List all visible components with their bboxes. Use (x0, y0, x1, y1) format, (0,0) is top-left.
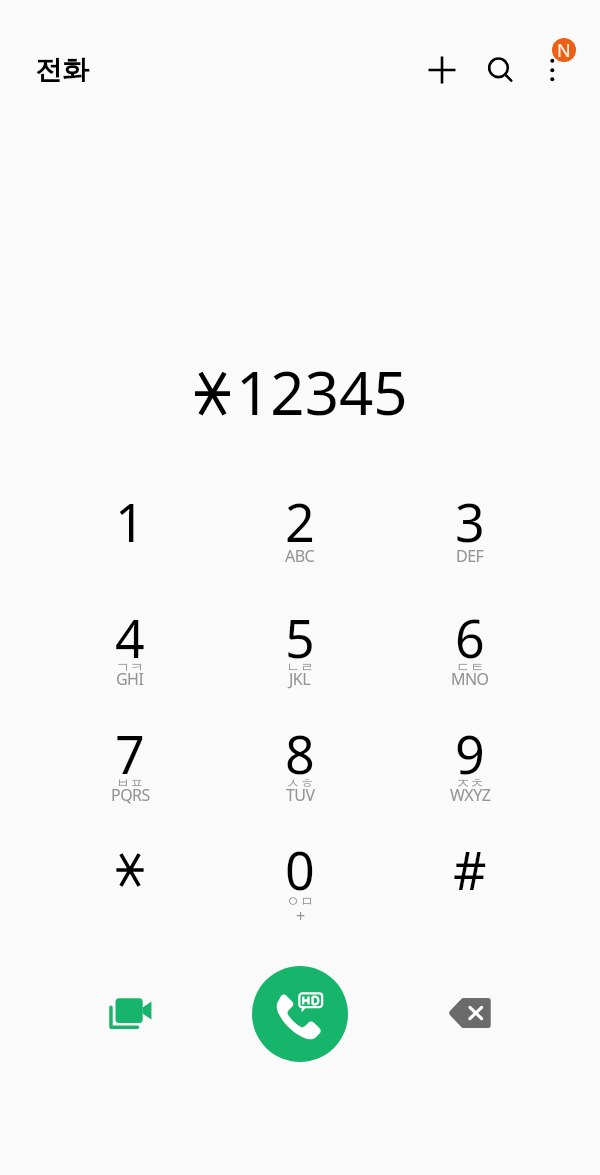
staticText: ㅇㅁ (286, 893, 314, 911)
staticText: TUV (286, 784, 315, 806)
staticText: 12345 (236, 351, 408, 433)
staticText: 4 (115, 602, 145, 673)
button[interactable]: 6 (385, 587, 555, 703)
staticText: DEF (456, 545, 484, 567)
staticText: JKL (289, 668, 311, 690)
staticText: + (296, 905, 305, 927)
button[interactable]: Backspace (438, 979, 506, 1047)
button[interactable]: 7 (45, 703, 215, 819)
button[interactable]: 1 (45, 471, 215, 587)
staticText: 3 (455, 486, 485, 557)
button[interactable]: Call (252, 966, 348, 1062)
staticText: 0 (285, 834, 315, 905)
staticText: 2 (285, 486, 315, 557)
button[interactable]: 9 (385, 703, 555, 819)
staticText: ㅅㅎ (286, 775, 314, 793)
staticText: 6 (455, 602, 485, 673)
button[interactable]: # (385, 819, 555, 935)
staticText: # (453, 834, 487, 905)
staticText: MNO (451, 668, 489, 690)
staticText: ㅂㅍ (116, 775, 144, 793)
staticText: N (557, 38, 571, 62)
button[interactable]: Search (476, 45, 524, 93)
staticText: ㅈㅊ (456, 775, 484, 793)
button[interactable]: Video call (96, 979, 164, 1047)
staticText: ABC (285, 545, 315, 567)
staticText: ㄱㅋ (116, 659, 144, 677)
staticText: 9 (455, 718, 485, 789)
staticText: ㄷㅌ (456, 659, 484, 677)
staticText: GHI (116, 668, 144, 690)
staticText: WXYZ (450, 784, 491, 806)
staticText: PQRS (111, 784, 150, 806)
button[interactable]: 0 (215, 819, 385, 935)
button[interactable]: Add (418, 46, 466, 94)
button[interactable]: 4 (45, 587, 215, 703)
staticText: 7 (115, 718, 145, 789)
button[interactable]: 5 (215, 587, 385, 703)
staticText: 5 (285, 602, 315, 673)
button[interactable]: star (45, 819, 215, 935)
staticText: 전화 (35, 53, 89, 87)
button[interactable]: More options (530, 42, 574, 86)
staticText: 1 (115, 486, 145, 557)
button[interactable]: 3 (385, 471, 555, 587)
button[interactable]: 8 (215, 703, 385, 819)
staticText: 8 (285, 718, 315, 789)
button[interactable]: 2 (215, 471, 385, 587)
staticText: ㄴㄹ (286, 659, 314, 677)
